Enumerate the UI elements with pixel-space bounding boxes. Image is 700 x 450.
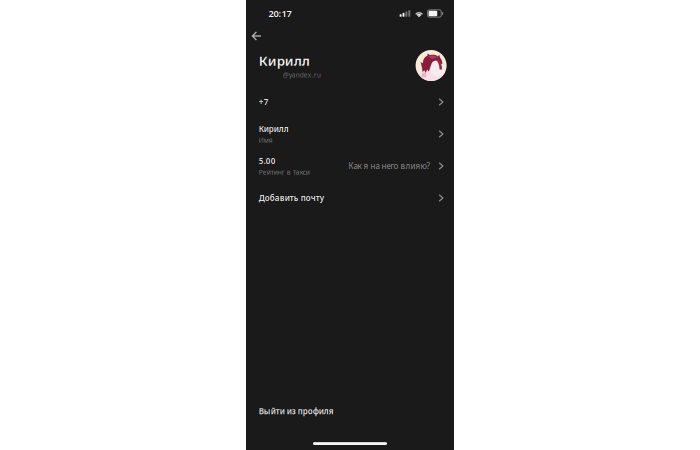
staticText: Имя bbox=[259, 136, 273, 144]
staticText: Рейтинг в Такси bbox=[259, 168, 310, 176]
staticText: 5.00 bbox=[259, 155, 276, 166]
staticText: Выйти из профиля bbox=[259, 406, 334, 416]
staticText: +7 bbox=[259, 97, 269, 107]
staticText: Кирилл bbox=[259, 123, 289, 134]
staticText: Добавить почту bbox=[259, 193, 324, 203]
staticText: Как я на него влияю? bbox=[348, 161, 429, 171]
button[interactable]: +7 bbox=[246, 86, 454, 118]
button[interactable]: 5.00 bbox=[246, 150, 454, 182]
button[interactable]: Выйти из профиля bbox=[246, 398, 454, 424]
staticText: 20:17 bbox=[268, 7, 291, 20]
button[interactable]: Добавить почту bbox=[246, 182, 454, 214]
button[interactable]: Back bbox=[252, 27, 262, 45]
staticText: @yandex.ru bbox=[283, 70, 321, 79]
staticText: Кирилл bbox=[259, 52, 310, 69]
button[interactable]: Кирилл bbox=[246, 118, 454, 150]
